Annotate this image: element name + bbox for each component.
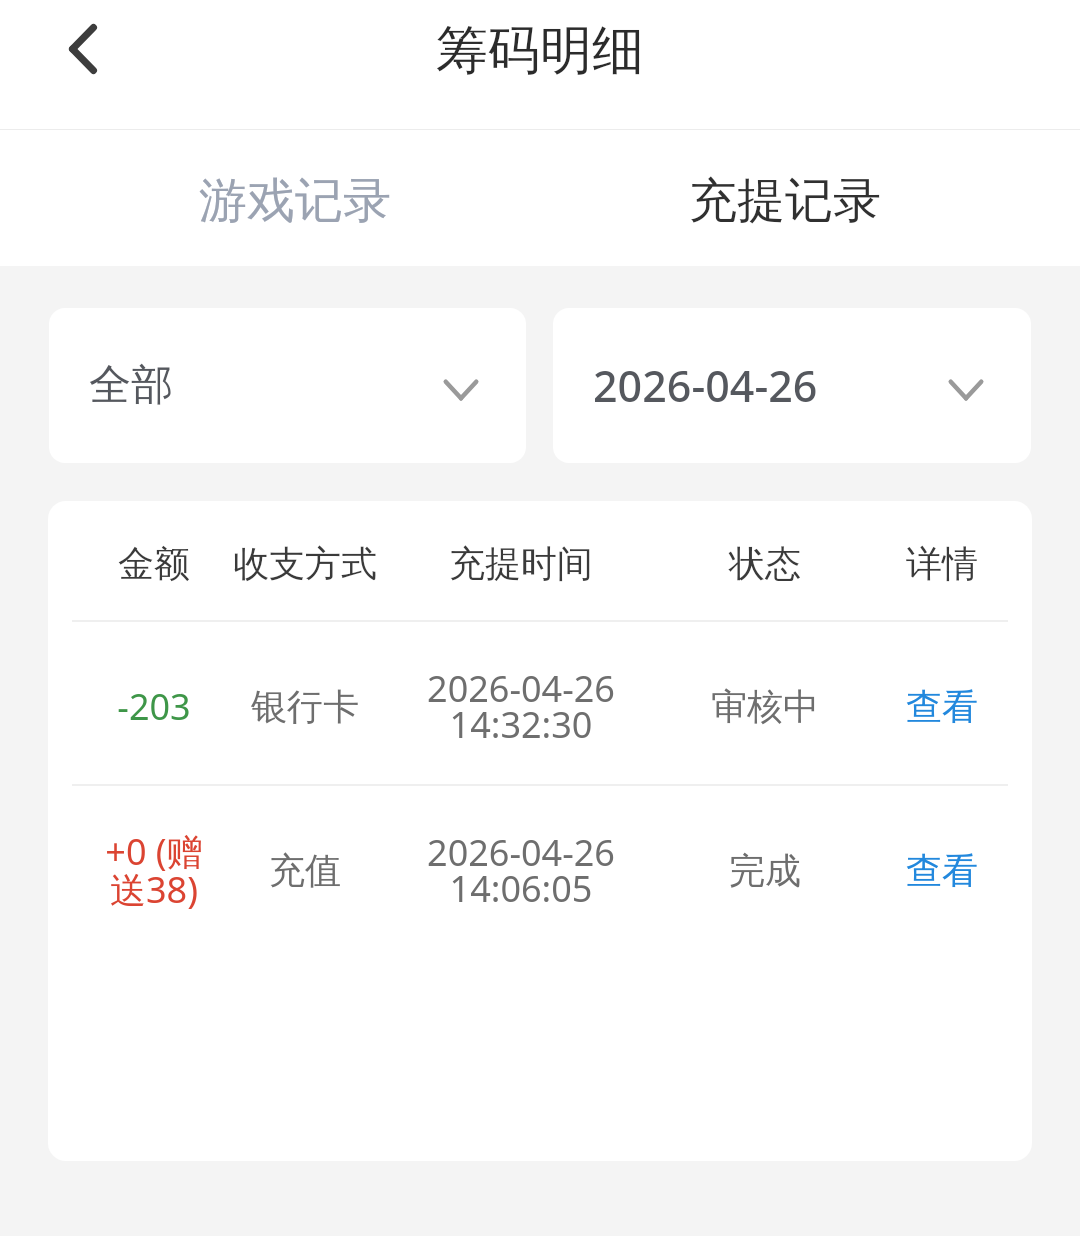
staticText: 完成 [729,848,801,893]
button[interactable]: 全部 [49,308,526,463]
button[interactable]: 查看 [852,622,1032,784]
staticText: 审核中 [711,684,819,729]
staticText: 银行卡 [251,684,359,729]
button[interactable]: Back [35,0,131,98]
button[interactable]: 充提记录 [540,130,1030,266]
staticText: 游戏记录 [199,171,391,231]
staticText: 收支方式 [233,541,377,586]
staticText: 2026-04-26 14:06:05 [427,828,615,913]
staticText: 查看 [906,848,978,893]
staticText: 筹码明细 [436,18,644,84]
staticText: 充提时间 [449,541,593,586]
button[interactable]: +0 (赠送38) [48,786,1032,949]
staticText: 2026-04-26 14:32:30 [427,664,615,749]
staticText: 金额 [118,541,190,586]
staticText: 2026-04-26 [593,356,818,415]
button[interactable]: 详情 [852,501,1032,620]
staticText: 状态 [729,541,801,586]
staticText: 全部 [89,359,173,412]
button[interactable]: 2026-04-26 [553,308,1031,463]
staticText: -203 [117,682,191,731]
staticText: 查看 [906,684,978,729]
staticText: +0 (赠送38) [98,827,210,914]
button[interactable]: 游戏记录 [50,130,540,266]
staticText: 充提记录 [689,171,881,231]
button[interactable]: -203 [48,622,1032,784]
staticText: 详情 [906,541,978,586]
button[interactable]: 查看 [852,786,1032,949]
staticText: 充值 [269,848,341,893]
